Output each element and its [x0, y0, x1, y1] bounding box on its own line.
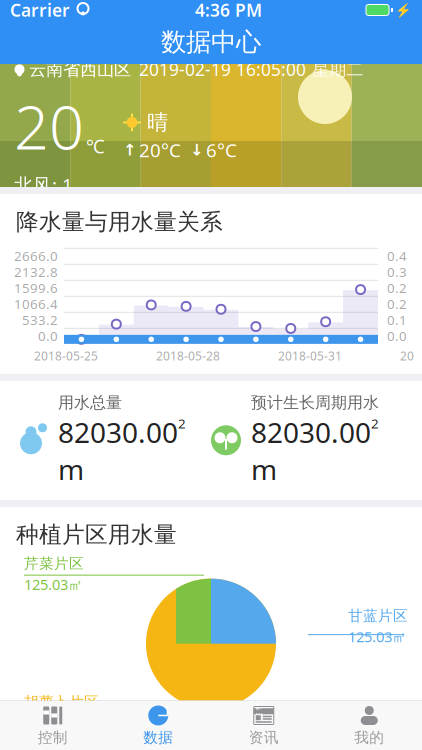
staticText: 20°C	[139, 137, 181, 162]
staticText: 北风: 1	[14, 172, 73, 197]
staticText: 4:36 PM	[195, 0, 262, 21]
staticText: 125.03㎡	[348, 627, 407, 646]
staticText: 甘蓝片区	[348, 607, 408, 625]
staticText: 82030.00m	[251, 413, 371, 488]
staticText: 533.2	[22, 311, 58, 329]
staticText: 2	[178, 414, 186, 432]
staticText: 云南省西山区	[29, 59, 131, 80]
staticText: ⚡	[395, 2, 412, 18]
staticText: 82030.00m	[58, 413, 178, 488]
staticText: 1599.6	[14, 279, 58, 297]
staticText: 125.03㎡	[24, 575, 83, 594]
staticText: ↑	[123, 141, 136, 159]
staticText: 0.0	[38, 327, 58, 345]
staticText: 数据中心	[161, 26, 261, 57]
staticText: 1066.4	[14, 295, 58, 313]
staticText: 种植片区用水量	[16, 521, 177, 549]
staticText: ↓	[190, 141, 203, 159]
staticText: 2018-05-31	[278, 348, 342, 364]
staticText: 6°C	[206, 137, 237, 162]
staticText: 资讯	[249, 728, 279, 746]
staticText: 我的	[354, 728, 384, 746]
staticText: 晴	[147, 109, 168, 135]
staticText: 20	[14, 85, 84, 166]
staticText: 2018-05-28	[156, 348, 220, 364]
staticText: 0.2	[387, 279, 407, 297]
staticText: 0.0	[387, 327, 407, 345]
staticText: NEWS	[256, 693, 264, 729]
staticText: 20	[400, 348, 414, 364]
staticText: 2019-02-19 16:05:00	[139, 58, 306, 81]
staticText: Carrier	[10, 0, 70, 21]
staticText: 预计生长周期用水	[251, 393, 379, 412]
staticText: 0.3	[387, 263, 407, 281]
button[interactable]: 控制	[0, 701, 105, 750]
button[interactable]: 数据	[105, 701, 211, 750]
staticText: 胡萝卜片区	[24, 693, 99, 711]
staticText: 2	[371, 414, 379, 432]
button[interactable]: NEWS	[211, 701, 316, 750]
staticText: 芹菜片区	[24, 555, 84, 573]
button[interactable]: 我的	[316, 701, 422, 750]
staticText: 2666.0	[14, 247, 58, 265]
staticText: 2018-05-25	[34, 348, 98, 364]
staticText: 星期二	[312, 59, 363, 80]
staticText: 用水总量	[58, 393, 122, 412]
staticText: 0.2	[387, 295, 407, 313]
staticText: 2132.8	[14, 263, 58, 281]
staticText: 0.1	[387, 311, 407, 329]
staticText: 0.4	[387, 247, 407, 265]
staticText: 数据	[143, 728, 173, 746]
staticText: ℃	[86, 133, 105, 158]
staticText: 498.46㎡	[24, 713, 83, 733]
staticText: 控制	[38, 728, 68, 746]
staticText: 降水量与用水量关系	[16, 208, 223, 236]
